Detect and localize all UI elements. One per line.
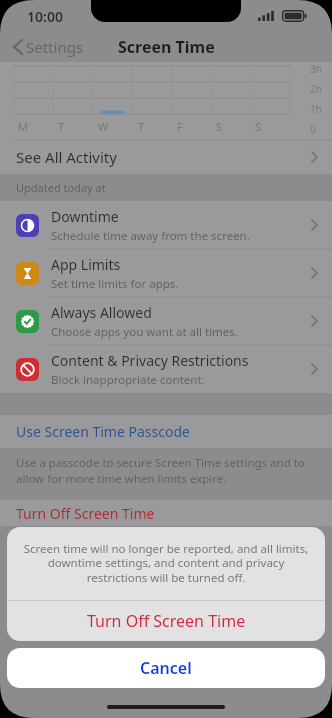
staticText: Turn Off Screen Time [16,504,155,523]
staticText: Set time limits for apps. [51,276,179,292]
staticText: Settings [26,37,84,57]
staticText: Updated today at [16,180,106,195]
button[interactable]: App Limits [0,249,332,297]
button[interactable]: Downtime [0,201,332,249]
staticText: App Limits [51,255,121,274]
button[interactable]: Always Allowed [0,297,332,345]
staticText: Block inappropriate content. [51,372,205,388]
staticText: Downtime [51,207,119,226]
staticText: 3h [310,62,322,76]
staticText: 10:00 [27,7,63,26]
staticText: S [255,119,262,134]
button[interactable]: Settings [10,33,87,61]
staticText: W [98,119,109,134]
staticText: 0 [310,122,316,136]
staticText: 1h [310,102,322,116]
staticText: Screen Time [118,36,215,58]
button[interactable]: Cancel [7,648,325,688]
staticText: Cancel [140,657,192,679]
staticText: S [216,119,223,134]
staticText: Content & Privacy Restrictions [51,351,249,370]
button[interactable]: Content & Privacy Restrictions [0,345,332,393]
staticText: Use a passcode to secure Screen Time set… [16,455,314,486]
staticText: T [58,119,65,134]
button[interactable]: Turn Off Screen Time [0,500,332,526]
button[interactable]: Turn Off Screen Time [7,601,325,641]
staticText: F [177,119,183,134]
staticText: M [18,119,28,134]
staticText: Screen time will no longer be reported, … [23,541,309,586]
button[interactable]: See All Activity [0,140,332,174]
staticText: Turn Off Screen Time [87,610,246,632]
staticText: Schedule time away from the screen. [51,228,250,244]
staticText: Use Screen Time Passcode [16,422,190,441]
staticText: 2h [310,82,322,96]
staticText: Always Allowed [51,303,152,322]
staticText: Choose apps you want at all times. [51,324,238,340]
staticText: See All Activity [16,147,117,167]
staticText: T [138,119,145,134]
button[interactable]: Use Screen Time Passcode [0,415,332,448]
